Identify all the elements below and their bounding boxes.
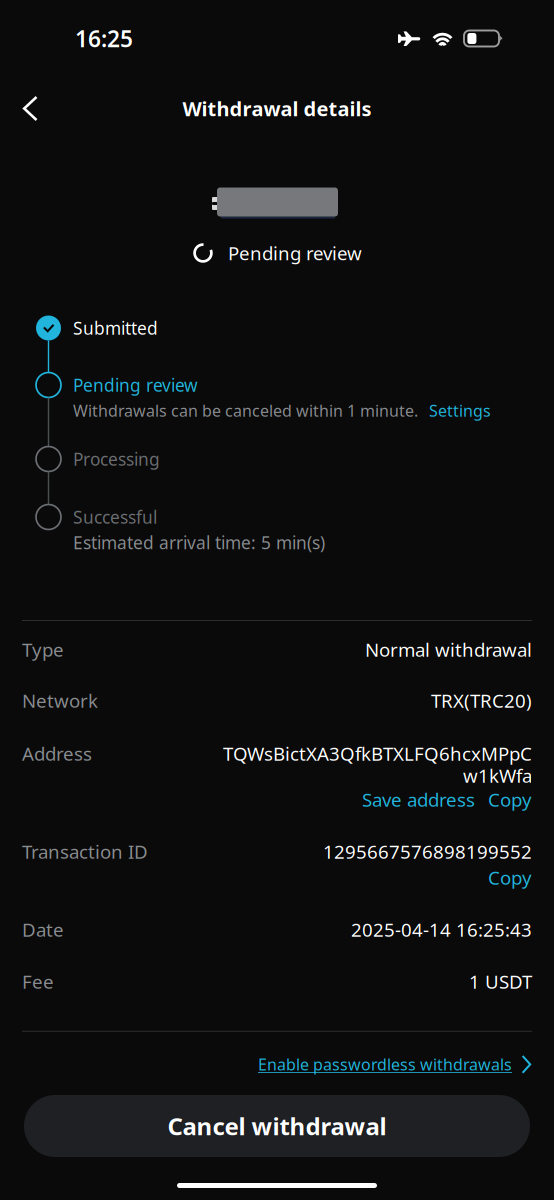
staticText: Settings bbox=[429, 400, 491, 421]
button[interactable]: Copy bbox=[488, 865, 532, 890]
staticText: Enable passwordless withdrawals bbox=[258, 1054, 512, 1075]
staticText: Pending review bbox=[228, 241, 362, 265]
staticText: 1 USDT bbox=[469, 969, 532, 994]
staticText: TQWsBictXA3QfkBTXLFQ6hcxMPpC bbox=[223, 741, 532, 766]
staticText: Copy bbox=[488, 865, 532, 890]
button[interactable]: Back bbox=[0, 81, 61, 136]
staticText: 16:25 bbox=[75, 23, 133, 53]
staticText: 2025-04-14 16:25:43 bbox=[351, 917, 532, 942]
staticText: Submitted bbox=[73, 316, 158, 339]
button[interactable]: Enable passwordless withdrawals bbox=[258, 1046, 554, 1083]
staticText: Copy bbox=[488, 787, 532, 812]
staticText: Cancel withdrawal bbox=[167, 1110, 386, 1142]
staticText: Withdrawal details bbox=[182, 95, 371, 122]
staticText: w1kWfa bbox=[463, 763, 532, 788]
staticText: Pending review bbox=[73, 373, 198, 396]
button[interactable]: Save address bbox=[362, 787, 475, 812]
staticText: Transaction ID bbox=[22, 839, 148, 864]
staticText: Save address bbox=[362, 787, 475, 812]
staticText: Network bbox=[22, 688, 98, 713]
staticText: Fee bbox=[22, 969, 54, 994]
staticText: Normal withdrawal bbox=[365, 637, 532, 662]
button[interactable]: Settings bbox=[429, 400, 491, 421]
staticText: TRX(TRC20) bbox=[431, 688, 532, 713]
staticText: Type bbox=[22, 637, 64, 662]
staticText: Date bbox=[22, 917, 64, 942]
staticText: Withdrawals can be canceled within 1 min… bbox=[73, 400, 418, 421]
staticText: 1295667576898199552 bbox=[323, 839, 532, 864]
staticText: Estimated arrival time: 5 min(s) bbox=[73, 531, 325, 554]
staticText: Address bbox=[22, 741, 92, 766]
button[interactable]: Cancel withdrawal bbox=[24, 1095, 530, 1157]
staticText: Processing bbox=[73, 447, 160, 470]
staticText: Successful bbox=[73, 505, 157, 528]
button[interactable]: Copy bbox=[488, 787, 532, 812]
